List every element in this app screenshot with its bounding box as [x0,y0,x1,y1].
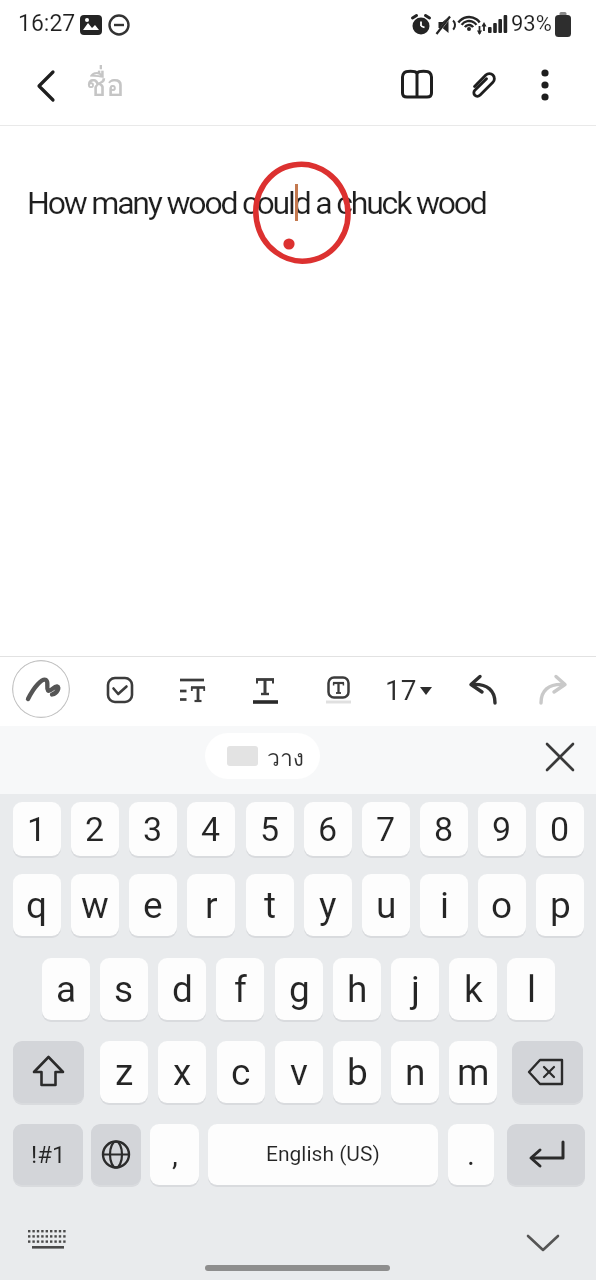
button[interactable]: e [129,874,177,936]
button[interactable]: 2 [71,802,119,856]
button[interactable]: q [13,874,61,936]
button[interactable]: o [478,874,526,936]
button[interactable]: !#1 [13,1124,83,1185]
staticText: r [205,884,218,927]
button[interactable] [91,1124,141,1185]
staticText: 2 [85,809,105,849]
staticText: i [440,884,449,927]
button[interactable]: h [333,958,381,1020]
staticText: 4 [201,809,221,849]
staticText: g [289,968,310,1011]
button[interactable]: 9 [478,802,526,856]
button[interactable] [171,669,213,711]
staticText: b [347,1051,368,1094]
button[interactable]: 3 [129,802,177,856]
staticText: n [405,1051,426,1094]
staticText: a [56,968,77,1011]
staticText: j [411,968,420,1011]
button[interactable] [244,669,286,711]
button[interactable]: c [217,1041,265,1103]
staticText: วาง [267,740,305,777]
button[interactable]: x [158,1041,206,1103]
button[interactable]: 8 [420,802,468,856]
button[interactable]: g [275,958,323,1020]
button[interactable]: d [158,958,206,1020]
button[interactable]: v [275,1041,323,1103]
button[interactable] [518,1222,568,1266]
button[interactable]: m [449,1041,497,1103]
button[interactable] [26,64,70,108]
button[interactable] [99,669,141,711]
button[interactable]: j [391,958,439,1020]
button[interactable] [507,1124,585,1185]
staticText: , [172,1137,178,1172]
staticText: k [464,968,483,1011]
button[interactable]: l [507,958,555,1020]
button[interactable]: u [362,874,410,936]
button[interactable] [317,669,359,711]
button[interactable]: 0 [536,802,584,856]
staticText: 9 [492,809,512,849]
button[interactable]: r [187,874,235,936]
staticText: 5 [260,809,280,849]
staticText: English (US) [266,1142,380,1167]
staticText: 0 [550,809,570,849]
button[interactable]: k [449,958,497,1020]
button[interactable] [396,64,438,106]
staticText: 16:27 [18,10,76,37]
staticText: m [457,1051,490,1094]
staticText: o [491,884,513,927]
button[interactable]: z [100,1041,148,1103]
staticText: w [81,884,109,927]
button[interactable] [462,64,504,106]
button[interactable]: English (US) [208,1124,438,1185]
button[interactable] [512,1041,583,1103]
staticText: 3 [143,809,163,849]
button[interactable]: f [216,958,264,1020]
button[interactable]: t [246,874,294,936]
staticText: 17 [385,674,417,707]
staticText: f [234,968,247,1011]
staticText: 1 [27,809,47,849]
button[interactable] [539,736,581,778]
button[interactable]: b [333,1041,381,1103]
button[interactable]: s [100,958,148,1020]
button[interactable]: 5 [246,802,294,856]
button[interactable]: . [448,1124,494,1185]
button[interactable]: 1 [13,802,61,856]
staticText: s [114,968,134,1011]
staticText: t [264,884,277,927]
staticText: !#1 [31,1141,66,1169]
button[interactable]: 7 [362,802,410,856]
staticText: 7 [376,809,396,849]
button[interactable]: วาง [205,733,320,779]
staticText: . [467,1137,475,1172]
button[interactable] [12,660,70,718]
button[interactable] [528,64,570,106]
staticText: y [319,884,337,927]
button[interactable] [22,1222,72,1266]
button[interactable]: a [42,958,90,1020]
staticText: ชื่อ [86,62,125,110]
button[interactable]: p [536,874,584,936]
button[interactable]: , [150,1124,199,1185]
button[interactable]: w [71,874,119,936]
staticText: 6 [318,809,338,849]
button[interactable]: 6 [304,802,352,856]
button[interactable] [458,667,504,713]
button[interactable]: i [420,874,468,936]
button[interactable] [13,1041,84,1103]
staticText: p [550,884,571,927]
button[interactable]: 4 [187,802,235,856]
staticText: h [347,968,368,1011]
staticText: u [376,884,397,927]
staticText: q [26,884,48,927]
staticText: c [231,1051,251,1094]
button[interactable] [532,667,578,713]
staticText: x [173,1051,192,1094]
button[interactable]: 17 [381,664,437,716]
staticText: How many wood could a chuck wood [27,184,486,222]
button[interactable]: n [391,1041,439,1103]
staticText: d [172,968,193,1011]
button[interactable]: y [304,874,352,936]
